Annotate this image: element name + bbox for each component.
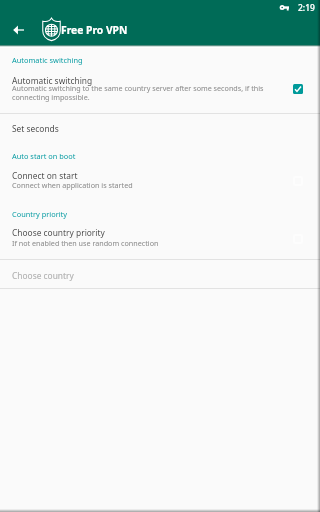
staticText: Choose country <box>12 270 74 281</box>
button[interactable]: Back <box>0 15 36 45</box>
button[interactable]: Choose country priority <box>0 221 320 258</box>
staticText: Country priority <box>12 209 68 219</box>
staticText: Set seconds <box>12 123 59 134</box>
button[interactable]: Automatic switching <box>0 68 320 112</box>
button[interactable]: Connect on start <box>0 163 320 203</box>
button[interactable]: Choose country <box>0 259 320 288</box>
staticText: Connect on start <box>12 170 78 181</box>
button[interactable]: Set seconds <box>0 113 320 145</box>
staticText: Free Pro VPN <box>61 23 128 37</box>
staticText: 2:19 <box>298 2 315 14</box>
staticText: Automatic switching <box>12 55 83 65</box>
staticText: Automatic switching to the same country … <box>12 83 274 102</box>
staticText: Auto start on boot <box>12 151 76 161</box>
staticText: If not enabled then use random connectio… <box>12 238 159 248</box>
staticText: Choose country priority <box>12 227 105 238</box>
staticText: Connect when application is started <box>12 180 133 190</box>
staticText: Automatic switching <box>12 75 93 86</box>
